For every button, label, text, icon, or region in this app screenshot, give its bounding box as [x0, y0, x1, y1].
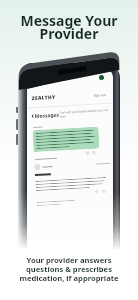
- staticText: Chat with your Zealthy Weight Loss care …: [59, 108, 110, 119]
- staticText: Sign out: [93, 93, 107, 98]
- staticText: Messages: [34, 112, 60, 120]
- staticText: Your provider answers questions & prescr…: [15, 255, 123, 283]
- staticText: ZEALTHY: [31, 94, 56, 102]
- staticText: Message Your Provider: [8, 11, 130, 43]
